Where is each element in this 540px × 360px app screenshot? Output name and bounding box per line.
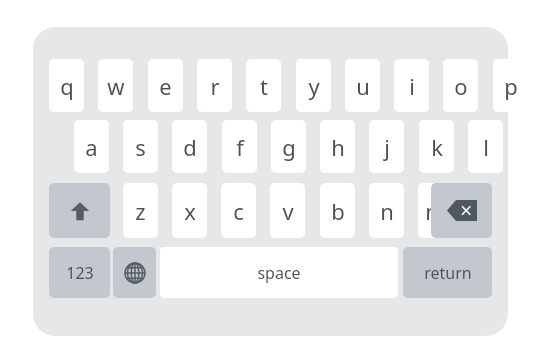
button[interactable]: y <box>296 59 331 112</box>
button[interactable]: i <box>394 59 429 112</box>
button[interactable]: l <box>468 120 503 173</box>
button[interactable]: b <box>320 183 355 238</box>
button[interactable]: z <box>123 183 158 238</box>
staticText: a <box>85 132 98 162</box>
button[interactable]: 123 <box>49 247 110 298</box>
staticText: j <box>384 132 390 162</box>
staticText: o <box>454 71 468 101</box>
staticText: h <box>331 132 345 162</box>
button[interactable]: Change keyboard language <box>113 247 156 298</box>
button[interactable]: r <box>197 59 232 112</box>
staticText: x <box>184 196 196 226</box>
staticText: k <box>431 132 443 162</box>
button[interactable]: t <box>246 59 281 112</box>
staticText: u <box>356 71 370 101</box>
button[interactable]: q <box>49 59 84 112</box>
button[interactable]: Shift <box>49 183 110 238</box>
staticText: n <box>380 196 394 226</box>
staticText: i <box>409 71 415 101</box>
button[interactable]: g <box>271 120 306 173</box>
button[interactable]: space <box>160 247 398 298</box>
button[interactable]: f <box>222 120 257 173</box>
staticText: s <box>135 132 146 162</box>
button[interactable]: h <box>320 120 355 173</box>
staticText: b <box>331 196 345 226</box>
staticText: z <box>135 196 146 226</box>
button[interactable]: v <box>270 183 305 238</box>
button[interactable]: x <box>172 183 207 238</box>
staticText: p <box>504 71 518 101</box>
button[interactable]: e <box>148 59 183 112</box>
button[interactable]: s <box>123 120 158 173</box>
staticText: c <box>233 196 244 226</box>
button[interactable]: w <box>98 59 133 112</box>
button[interactable]: o <box>443 59 478 112</box>
button[interactable]: j <box>369 120 404 173</box>
staticText: return <box>424 262 472 284</box>
staticText: e <box>159 71 172 101</box>
button[interactable]: k <box>419 120 454 173</box>
staticText: t <box>260 71 268 101</box>
staticText: y <box>308 71 320 101</box>
button[interactable]: u <box>345 59 380 112</box>
staticText: l <box>483 132 489 162</box>
button[interactable]: Backspace <box>431 183 492 238</box>
button[interactable]: n <box>369 183 404 238</box>
button[interactable]: a <box>74 120 109 173</box>
button[interactable]: p <box>493 59 528 112</box>
staticText: g <box>282 132 296 162</box>
button[interactable]: return <box>403 247 492 298</box>
staticText: q <box>60 71 74 101</box>
staticText: space <box>257 262 301 284</box>
button[interactable]: c <box>221 183 256 238</box>
staticText: r <box>210 71 220 101</box>
staticText: v <box>282 196 294 226</box>
staticText: 123 <box>66 262 94 284</box>
staticText: w <box>107 71 125 101</box>
button[interactable]: m <box>418 183 453 238</box>
staticText: m <box>425 196 446 226</box>
staticText: d <box>183 132 197 162</box>
staticText: f <box>236 132 244 162</box>
button[interactable]: d <box>172 120 207 173</box>
